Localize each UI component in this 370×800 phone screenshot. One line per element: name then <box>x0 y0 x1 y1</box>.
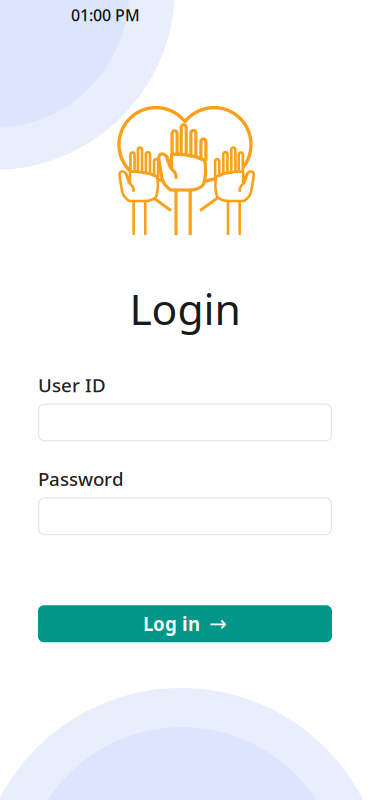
staticText: Login <box>129 280 240 337</box>
staticText: Log in <box>143 611 200 636</box>
staticText: → <box>209 612 227 636</box>
staticText: Password <box>38 466 124 491</box>
staticText: 01:00 PM <box>71 4 140 26</box>
staticText: User ID <box>38 373 106 397</box>
button[interactable]: Log in <box>38 605 332 642</box>
